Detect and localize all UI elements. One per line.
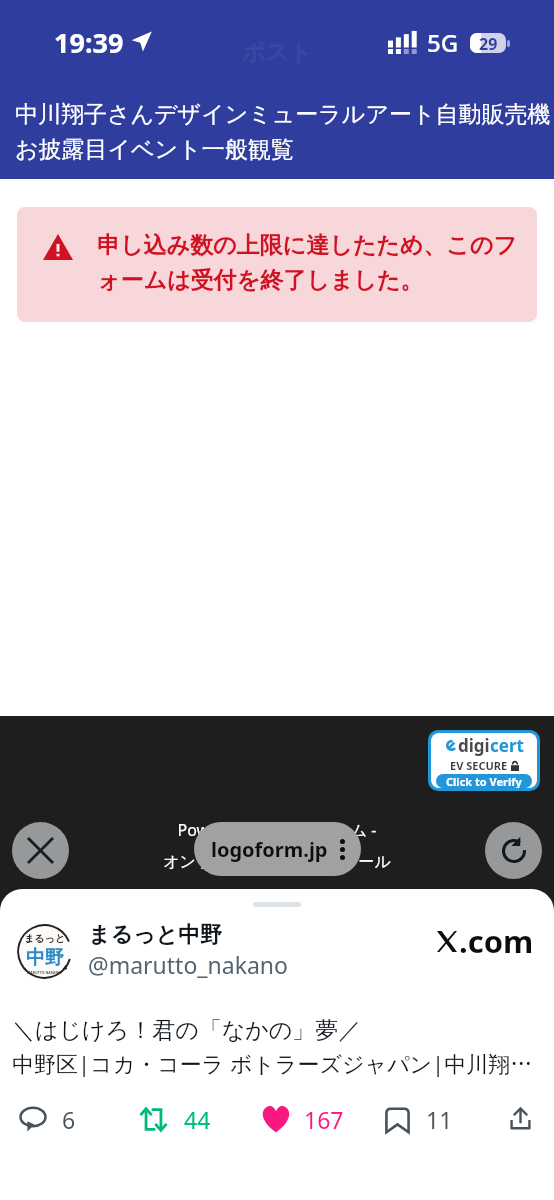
button[interactable]: Close xyxy=(12,822,69,879)
staticText: 6 xyxy=(62,1104,76,1135)
button[interactable]: Share xyxy=(504,1102,536,1134)
staticText: 5G xyxy=(427,26,459,59)
staticText: 11 xyxy=(426,1104,453,1135)
staticText: .com xyxy=(459,920,534,962)
staticText: まるっと中野 xyxy=(88,921,223,949)
staticText: 中野区|コカ・コーラ ボトラーズジャパン|中川翔子さんデザイン xyxy=(12,1048,541,1078)
staticText: 167 xyxy=(304,1104,344,1135)
button[interactable]: Reload xyxy=(485,822,542,879)
staticText: digi xyxy=(458,734,490,757)
staticText: cert xyxy=(490,734,524,757)
staticText: MARUTTO NAKANO xyxy=(27,970,62,975)
staticText: 申し込み数の上限に達したため、このフォームは受付を終了しました。 xyxy=(97,231,527,295)
staticText: Powered by ロゴフォーム - オンラインフォーム作成ツール xyxy=(163,819,391,872)
button[interactable]: 6 xyxy=(19,1102,76,1136)
button[interactable]: DigiCert EV Secure - Click to Verify xyxy=(431,733,537,788)
staticText: 29 xyxy=(479,33,498,53)
button[interactable]: logoform.jp xyxy=(194,822,361,876)
staticText: Click to Verify xyxy=(446,774,522,788)
staticText: ポスト xyxy=(242,38,313,67)
staticText: 19:39 xyxy=(54,24,124,61)
staticText: EV SECURE xyxy=(450,758,508,773)
staticText: まるっと xyxy=(24,932,65,945)
staticText: 44 xyxy=(184,1104,211,1135)
staticText: logoform.jp xyxy=(211,836,328,863)
button[interactable]: 167 xyxy=(261,1102,344,1136)
button[interactable]: 11 xyxy=(384,1102,453,1136)
staticText: 中川翔子さんデザインミューラルアート自動販売機お披露目イベント一般観覧 xyxy=(15,100,551,164)
staticText: @marutto_nakano xyxy=(88,949,288,980)
button[interactable]: 44 xyxy=(138,1102,211,1136)
staticText: 中野 xyxy=(26,946,64,970)
staticText: ＼はじけろ！君の「なかの」夢／ xyxy=(12,1016,362,1045)
